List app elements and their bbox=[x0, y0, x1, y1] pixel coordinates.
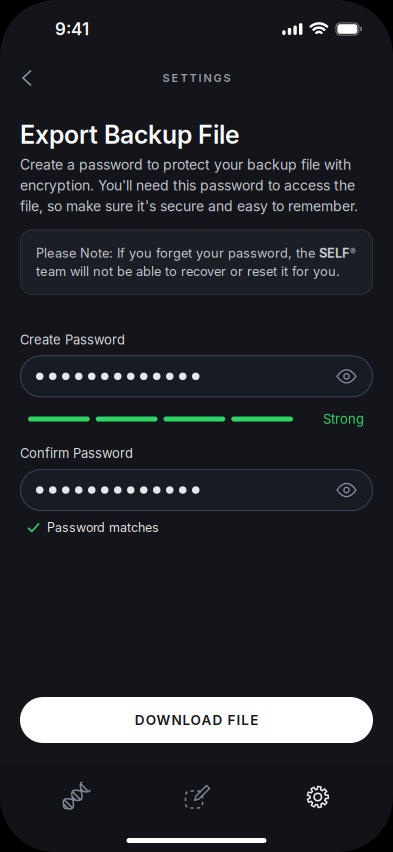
staticText: S bbox=[223, 71, 230, 84]
staticText: G bbox=[213, 71, 221, 84]
staticText: S bbox=[162, 71, 169, 84]
staticText: Strong bbox=[323, 411, 364, 427]
staticText: DOWNLOAD FILE bbox=[135, 712, 258, 728]
button[interactable]: Show password bbox=[337, 369, 373, 383]
staticText: T bbox=[180, 71, 187, 84]
staticText: N bbox=[203, 71, 211, 84]
staticText: Please Note: If you forget your password… bbox=[36, 245, 356, 279]
staticText: I bbox=[198, 71, 201, 84]
button[interactable]: Compose bbox=[136, 769, 257, 825]
staticText: T bbox=[189, 71, 196, 84]
staticText: Password matches bbox=[47, 520, 159, 535]
button[interactable]: Settings bbox=[257, 769, 378, 825]
staticText: 9:41 bbox=[55, 19, 89, 39]
button[interactable]: Back bbox=[0, 62, 31, 93]
staticText: Create Password bbox=[20, 332, 125, 347]
button[interactable]: DNA bbox=[15, 769, 136, 825]
button[interactable]: DOWNLOAD FILE bbox=[20, 697, 373, 743]
staticText: Confirm Password bbox=[20, 446, 133, 461]
button[interactable]: Show password bbox=[337, 483, 373, 497]
staticText: Export Backup File bbox=[20, 120, 240, 149]
staticText: E bbox=[171, 71, 178, 84]
staticText: Create a password to protect your backup… bbox=[20, 156, 358, 214]
